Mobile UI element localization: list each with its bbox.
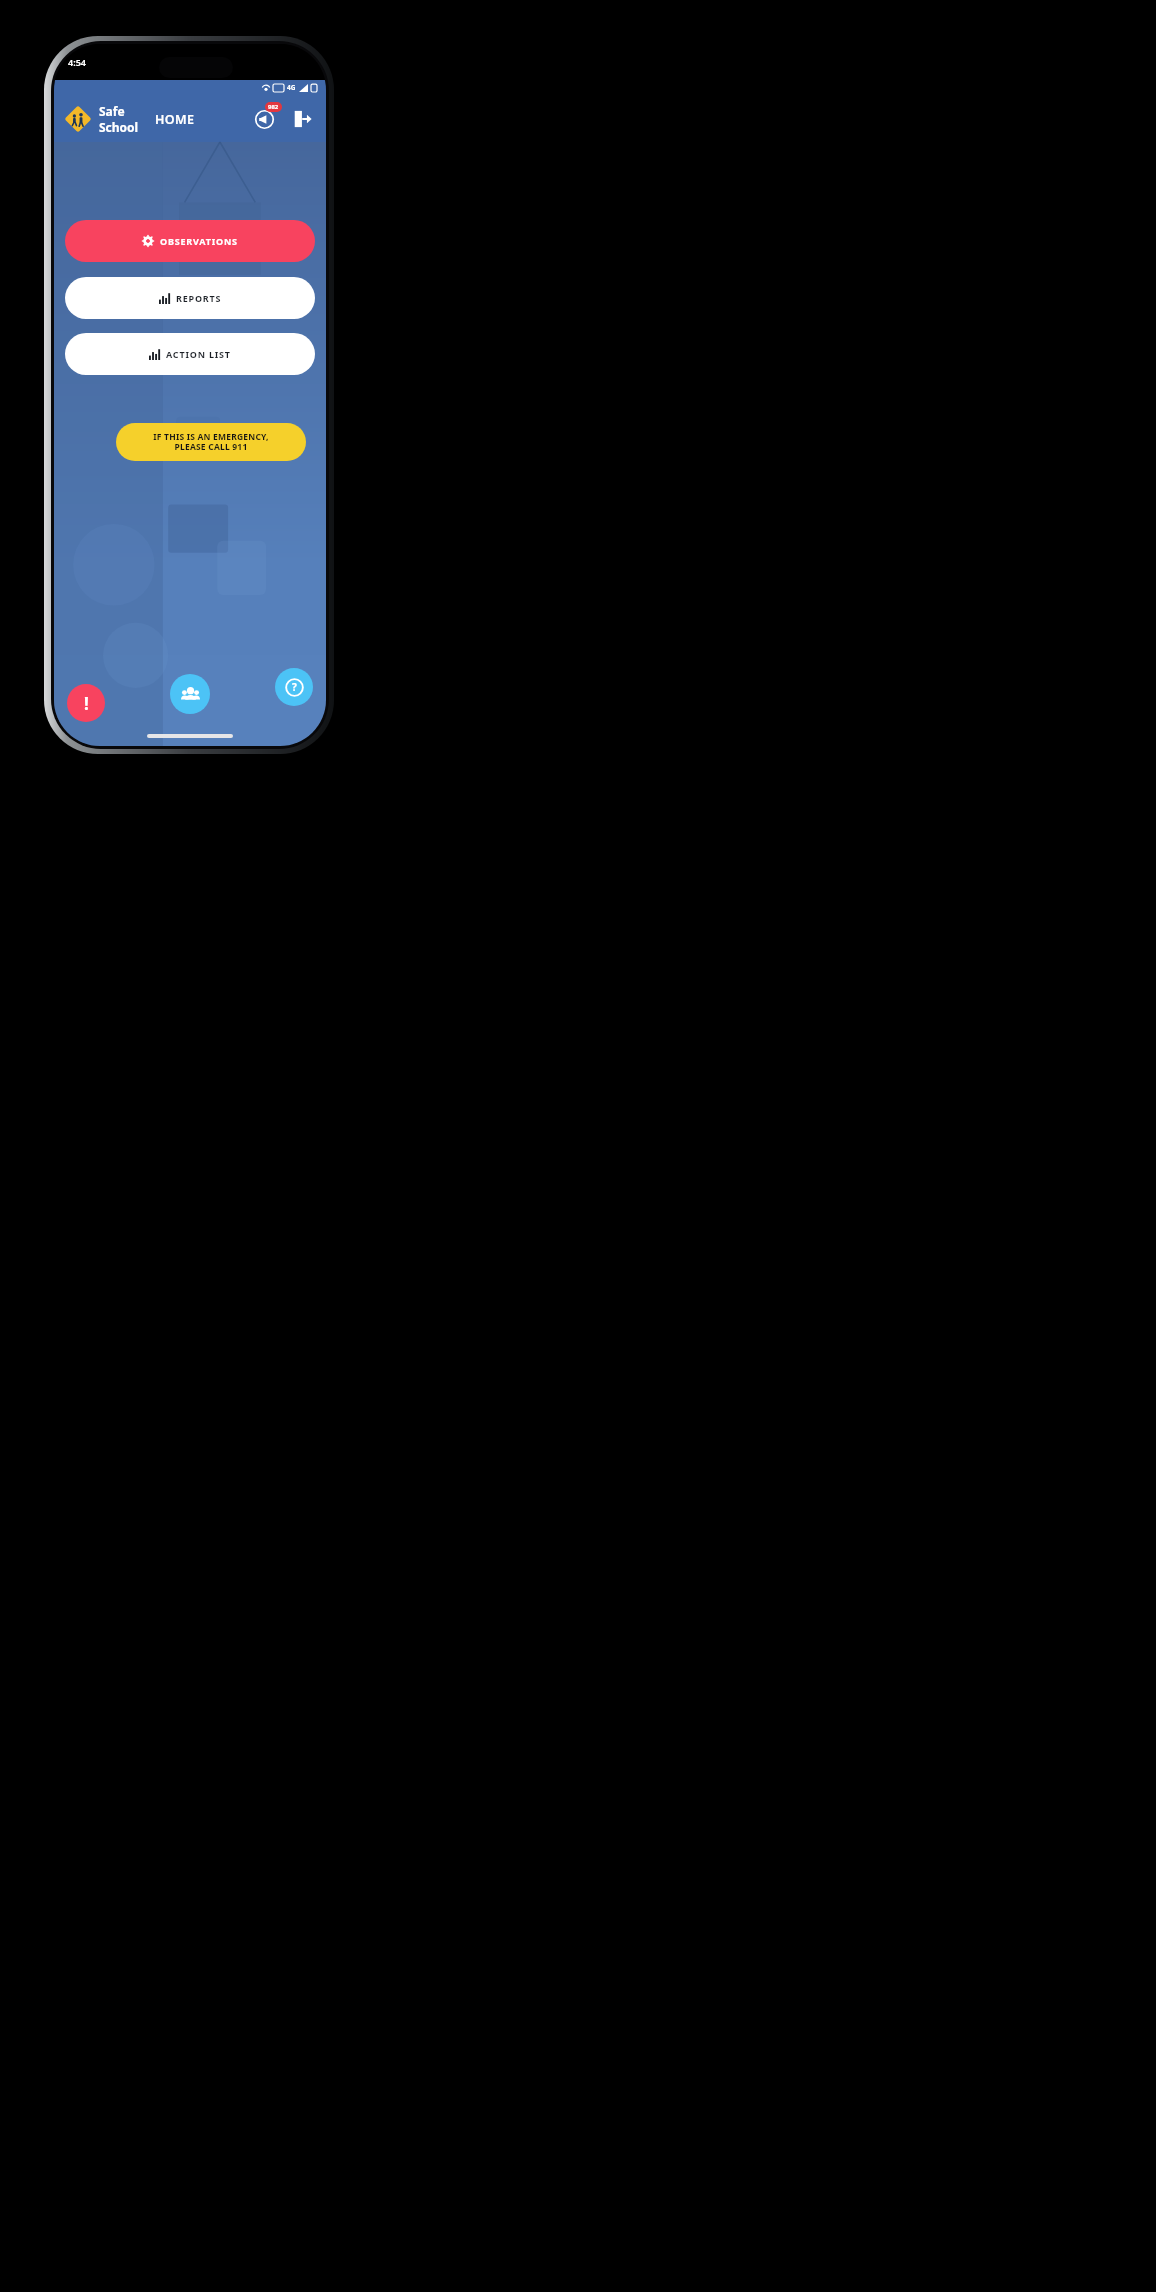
staticText: ? [292, 680, 297, 694]
button[interactable]: Emergency alert [67, 684, 105, 722]
button[interactable]: ACTION LIST [65, 333, 315, 375]
staticText: 982 [268, 103, 279, 111]
button[interactable]: Log out [289, 105, 317, 133]
button[interactable]: REPORTS [65, 277, 315, 319]
staticText: REPORTS [176, 292, 222, 304]
staticText: OBSERVATIONS [160, 235, 238, 247]
button[interactable]: People [170, 674, 210, 714]
staticText: ! [84, 692, 89, 715]
button[interactable]: Notifications [249, 104, 279, 134]
staticText: 4:54 [68, 56, 86, 68]
staticText: Safe [99, 103, 125, 119]
button[interactable]: OBSERVATIONS [65, 220, 315, 262]
staticText: School [99, 119, 139, 135]
button[interactable]: Help [275, 668, 313, 706]
staticText: ACTION LIST [166, 348, 231, 360]
staticText: IF THIS IS AN EMERGENCY, PLEASE CALL 911 [153, 431, 269, 453]
staticText: HOME [155, 111, 195, 128]
staticText: 4G [287, 83, 296, 92]
button[interactable]: IF THIS IS AN EMERGENCY, PLEASE CALL 911 [116, 423, 306, 461]
